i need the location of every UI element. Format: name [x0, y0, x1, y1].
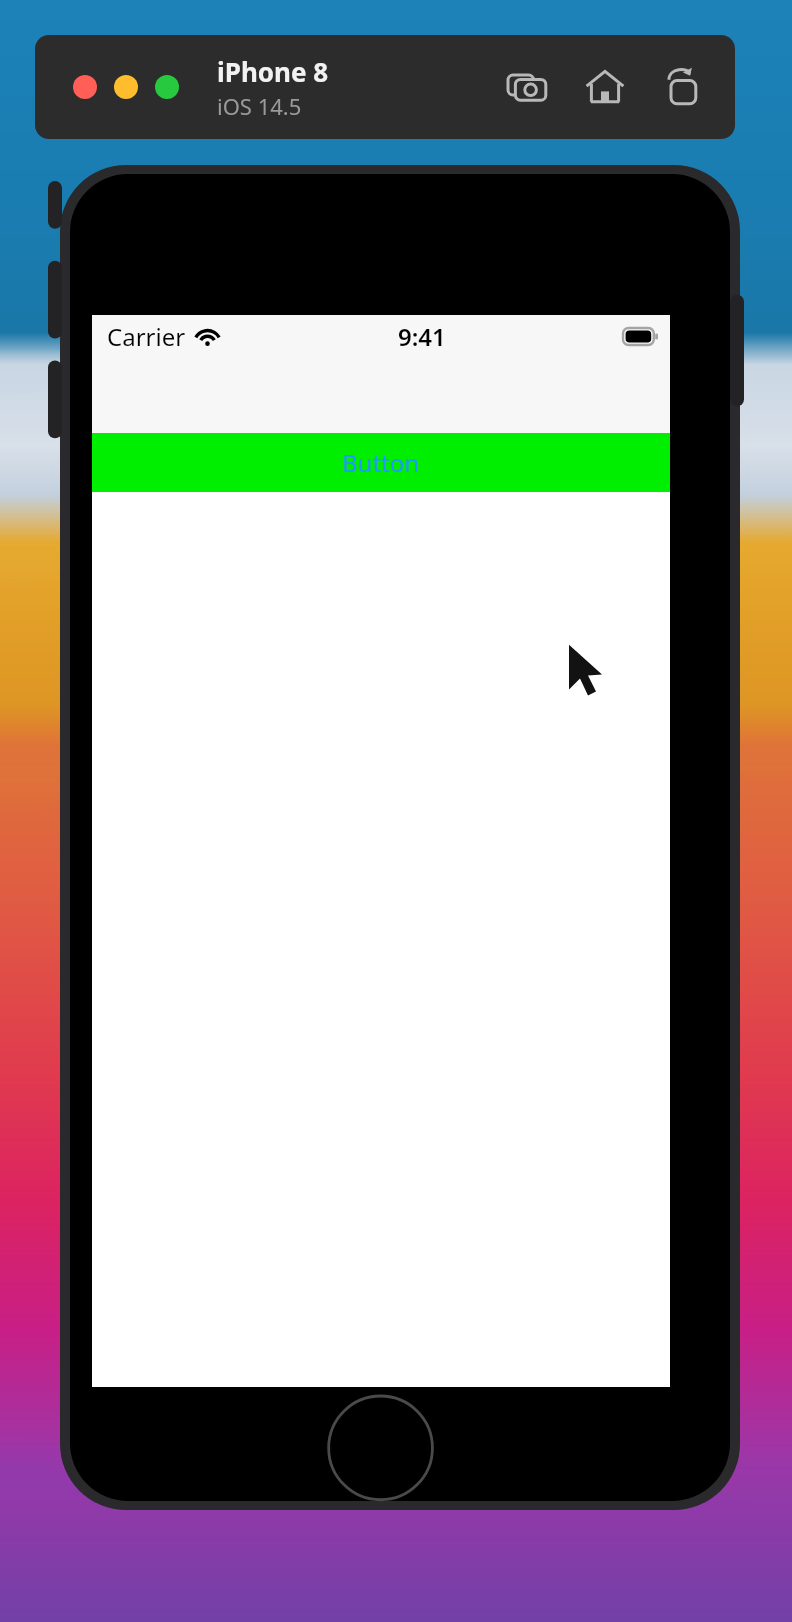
button[interactable]: Close — [73, 75, 97, 99]
staticText: iOS 14.5 — [217, 91, 302, 121]
button[interactable]: Minimize — [114, 75, 138, 99]
button[interactable]: Home — [581, 63, 629, 111]
button[interactable]: Rotate — [659, 63, 707, 111]
staticText: 9:41 — [398, 320, 446, 353]
button[interactable]: Screenshot — [503, 63, 551, 111]
button[interactable]: Zoom — [155, 75, 179, 99]
button[interactable]: Button — [92, 433, 670, 492]
staticText: Button — [342, 446, 420, 479]
staticText: iPhone 8 — [217, 54, 329, 89]
staticText: Carrier — [107, 320, 186, 353]
